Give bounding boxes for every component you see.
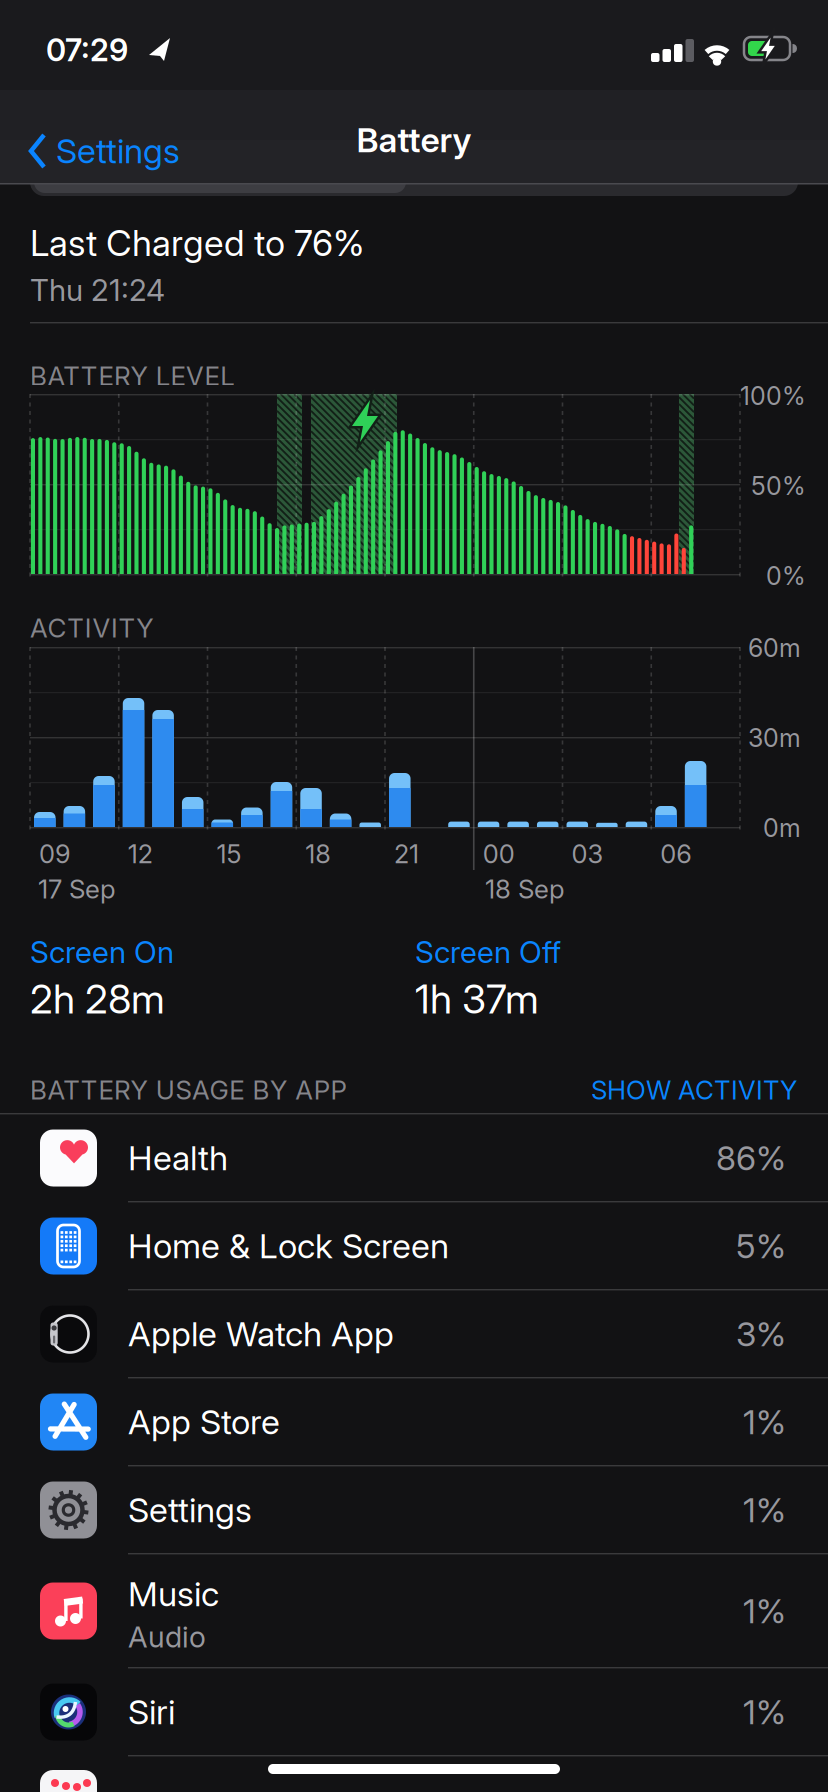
staticText: 86% <box>716 1138 786 1178</box>
staticText: 50% <box>751 471 806 501</box>
staticText: 17 Sep <box>38 873 116 905</box>
staticText: 18 Sep <box>485 873 565 905</box>
button[interactable]: Siri <box>0 1668 828 1756</box>
staticText: 0% <box>766 561 806 591</box>
staticText: Battery <box>356 119 471 160</box>
staticText: 3% <box>736 1314 786 1354</box>
button[interactable]: Health <box>0 1114 828 1202</box>
staticText: 18 <box>305 839 331 869</box>
staticText: 00 <box>483 839 515 869</box>
button[interactable]: Back <box>28 121 180 181</box>
button[interactable]: Music <box>0 1554 828 1668</box>
staticText: 5% <box>736 1226 786 1266</box>
staticText: 07:29 <box>46 31 128 69</box>
staticText: 100% <box>740 381 806 411</box>
staticText: Screen On <box>30 934 174 970</box>
staticText: 2h 28m <box>30 975 165 1023</box>
staticText: 60m <box>748 633 801 663</box>
staticText: Last Charged to 76% <box>30 221 364 264</box>
staticText: 1h 37m <box>415 975 539 1023</box>
staticText: BATTERY LEVEL <box>30 360 234 392</box>
button[interactable]: SHOW ACTIVITY <box>397 1060 797 1120</box>
staticText: 1% <box>743 1692 786 1732</box>
staticText: 30m <box>748 723 801 753</box>
button[interactable]: App Store <box>0 1378 828 1466</box>
staticText: SHOW ACTIVITY <box>591 1074 797 1106</box>
staticText: Music <box>128 1573 219 1614</box>
staticText: 0m <box>763 813 801 843</box>
staticText: BATTERY USAGE BY APP <box>30 1074 346 1106</box>
staticText: 03 <box>571 839 603 869</box>
staticText: 1% <box>743 1591 786 1631</box>
staticText: Apple Watch App <box>128 1313 394 1354</box>
button[interactable]: Settings <box>0 1466 828 1554</box>
staticText: Siri <box>128 1691 175 1732</box>
staticText: 12 <box>128 839 153 869</box>
button[interactable]: Home & Lock Screen <box>0 1202 828 1290</box>
staticText: Home & Lock Screen <box>128 1225 449 1266</box>
staticText: 1% <box>743 1490 786 1530</box>
staticText: 15 <box>216 839 241 869</box>
staticText: ACTIVITY <box>30 612 153 644</box>
staticText: Thu 21:24 <box>30 272 165 308</box>
staticText: 09 <box>39 839 71 869</box>
staticText: 1% <box>743 1402 786 1442</box>
staticText: Settings <box>56 130 180 171</box>
staticText: Settings <box>128 1489 252 1530</box>
staticText: 21 <box>394 839 419 869</box>
button[interactable]: Apple Watch App <box>0 1290 828 1378</box>
staticText: 06 <box>660 839 692 869</box>
staticText: Health <box>128 1137 228 1178</box>
staticText: App Store <box>128 1401 280 1442</box>
staticText: Audio <box>128 1619 206 1655</box>
staticText: Screen Off <box>415 934 561 970</box>
